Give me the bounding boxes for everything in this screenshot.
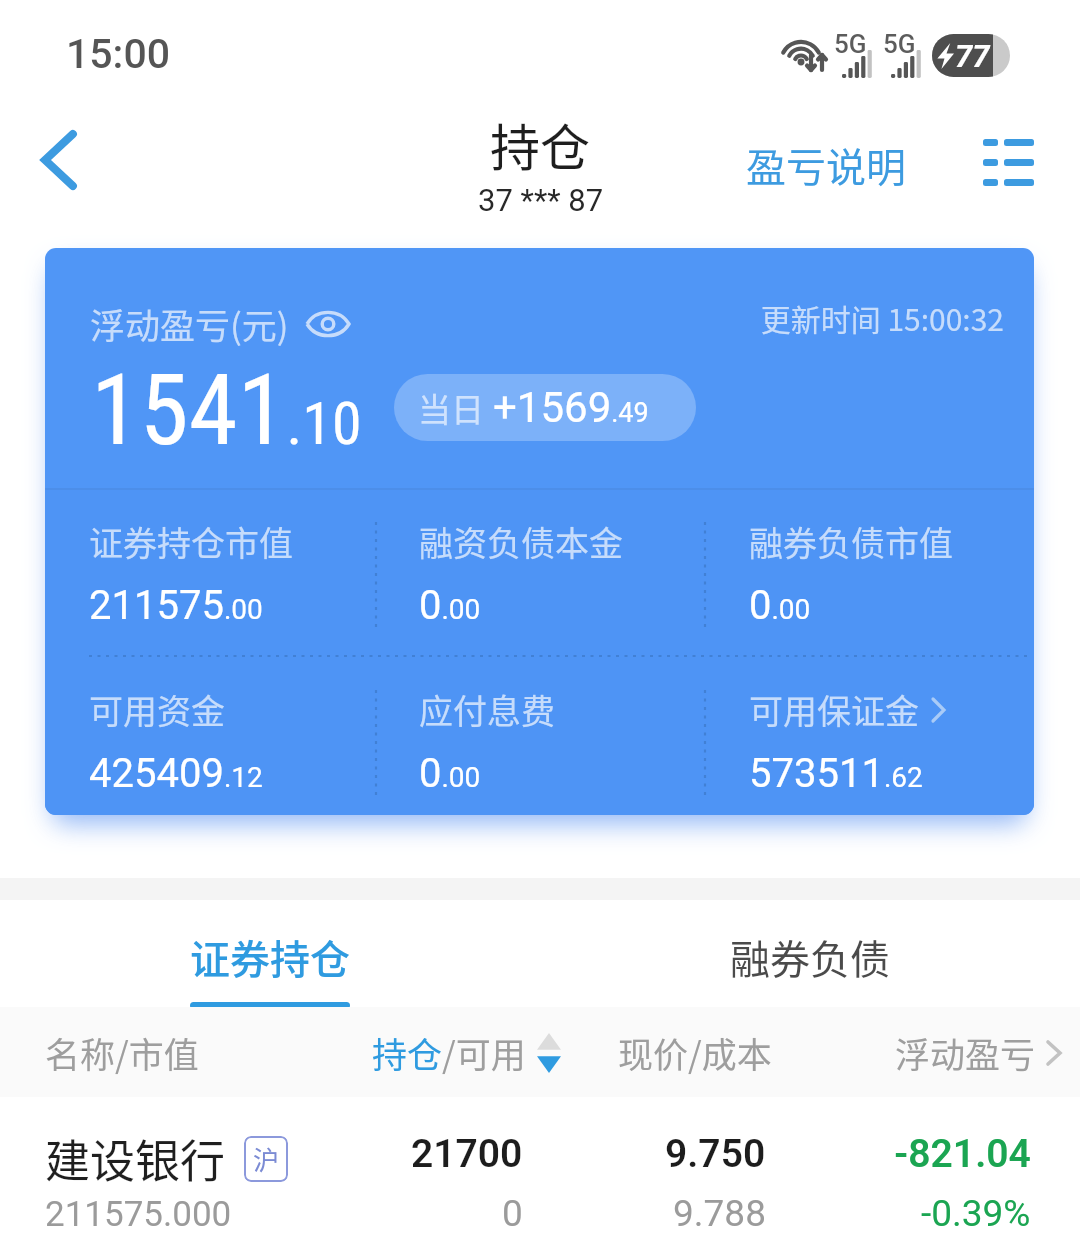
staticText: 现价/成本: [618, 1027, 772, 1078]
staticText: 证券持仓: [190, 928, 350, 986]
staticText: 211575.00: [89, 582, 263, 629]
staticText: 5G: [834, 29, 867, 59]
staticText: 0.00: [749, 582, 811, 629]
staticText: 425409.12: [89, 750, 263, 797]
button[interactable]: Toggle visibility: [305, 307, 351, 341]
button[interactable]: 盈亏说明: [728, 122, 924, 208]
staticText: 浮动盈亏: [895, 1027, 1036, 1078]
staticText: 可用保证金: [749, 685, 919, 734]
staticText: -0.39%: [921, 1192, 1031, 1235]
staticText: 21700: [411, 1131, 523, 1177]
staticText: 融券负债市值: [749, 517, 953, 566]
staticText: 9.750: [665, 1131, 766, 1177]
staticText: 9.788: [673, 1192, 766, 1235]
staticText: 浮动盈亏(元): [90, 298, 289, 349]
staticText: 盈亏说明: [746, 136, 906, 194]
staticText: 37 *** 87: [478, 182, 604, 218]
button[interactable]: 当日: [394, 374, 696, 441]
staticText: 融资负债本金: [419, 517, 623, 566]
staticText: 更新时间 15:00:32: [45, 296, 1004, 339]
button[interactable]: 证券持仓: [100, 900, 440, 1009]
button[interactable]: Back: [18, 118, 102, 202]
staticText: -821.04: [894, 1131, 1031, 1177]
button[interactable]: 浮动盈亏: [895, 1027, 1062, 1078]
button[interactable]: 融券负债: [640, 900, 980, 1009]
staticText: 当日: [418, 384, 484, 432]
staticText: +1569.49: [493, 383, 649, 432]
staticText: 77: [955, 38, 990, 74]
staticText: 0.00: [419, 582, 481, 629]
staticText: 可用资金: [89, 685, 225, 734]
staticText: 持仓/可用: [372, 1027, 526, 1078]
staticText: 573511.62: [749, 750, 923, 797]
staticText: 0: [502, 1192, 523, 1235]
staticText: 211575.000: [45, 1194, 232, 1235]
staticText: 名称/市值: [45, 1027, 199, 1078]
staticText: 融券负债: [730, 928, 890, 986]
staticText: 持仓: [490, 108, 590, 180]
button[interactable]: 可用保证金: [735, 667, 1034, 815]
staticText: 证券持仓市值: [89, 517, 293, 566]
staticText: 0.00: [419, 750, 481, 797]
button[interactable]: 建设银行: [0, 1097, 1080, 1250]
staticText: 沪: [253, 1140, 280, 1178]
staticText: 15:00: [66, 30, 171, 78]
staticText: 应付息费: [419, 685, 555, 734]
button[interactable]: Switch list view: [960, 120, 1056, 204]
staticText: 建设银行: [45, 1126, 226, 1191]
staticText: 1541.10: [91, 352, 362, 468]
button[interactable]: 持仓/可用: [372, 1027, 561, 1078]
staticText: 5G: [883, 29, 916, 59]
